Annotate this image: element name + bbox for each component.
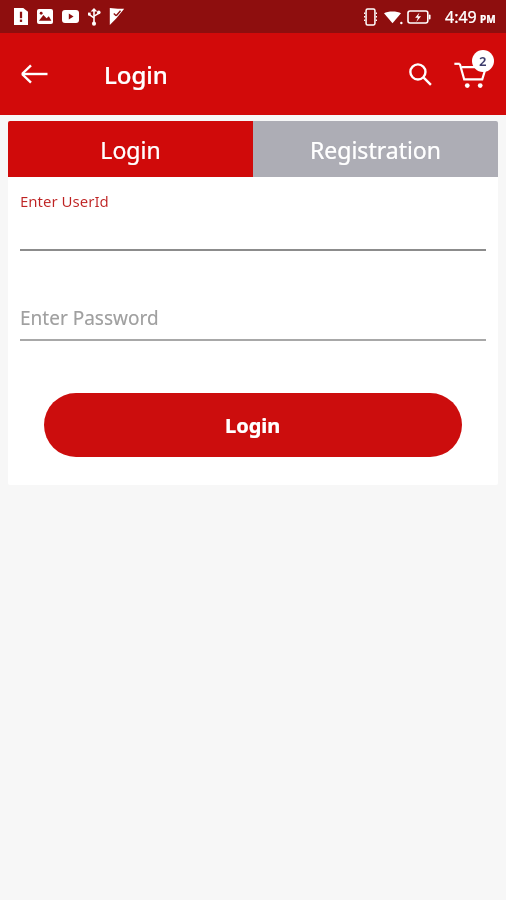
staticText: 4:49 (445, 6, 477, 28)
button[interactable]: Login (44, 393, 462, 457)
staticText: Login (225, 412, 281, 439)
button[interactable]: Search (396, 50, 444, 98)
staticText: Enter Password (20, 305, 159, 331)
button[interactable]: Cart, 2 items (444, 48, 496, 100)
staticText: Login (100, 134, 161, 165)
staticText: Login (104, 58, 168, 91)
staticText: PM (480, 12, 496, 26)
button[interactable]: Back (8, 48, 60, 100)
button[interactable]: Registration (253, 121, 498, 177)
button[interactable]: Login (8, 121, 253, 177)
staticText: Registration (310, 134, 441, 165)
staticText: Enter UserId (20, 191, 109, 211)
staticText: 2 (479, 52, 487, 70)
